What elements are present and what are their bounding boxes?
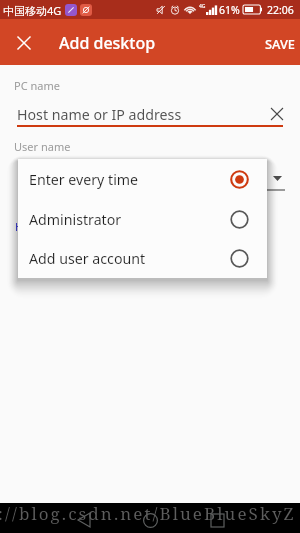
staticText: Administrator — [29, 210, 122, 229]
staticText: User name — [14, 139, 71, 154]
staticText: PC name — [14, 78, 60, 93]
button[interactable]: Host name or IP address — [17, 105, 267, 125]
button[interactable]: Home — [136, 506, 164, 533]
button[interactable]: Administrator — [18, 199, 267, 239]
staticText: Add desktop — [59, 32, 156, 54]
staticText: ://blog.csdn.net/BlueBlueSkyZ — [0, 502, 296, 525]
button[interactable]: Recents — [203, 506, 231, 533]
button[interactable]: Clear — [266, 103, 288, 125]
button[interactable]: Enter every time — [18, 159, 267, 199]
staticText: 4G — [199, 3, 206, 10]
button[interactable]: Add user account — [18, 239, 267, 278]
staticText: Host name or IP address — [17, 105, 182, 124]
staticText: Host name — [15, 219, 72, 234]
staticText: SAVE — [265, 35, 295, 52]
staticText: 61% — [219, 3, 240, 17]
button[interactable]: Back — [70, 506, 98, 533]
staticText: 中国移动4G — [3, 3, 62, 18]
button[interactable]: Close — [2, 21, 46, 65]
staticText: Enter every time — [29, 170, 139, 189]
button[interactable]: SAVE — [255, 22, 300, 65]
staticText: Add user account — [29, 249, 146, 268]
staticText: 22:06 — [267, 3, 294, 17]
